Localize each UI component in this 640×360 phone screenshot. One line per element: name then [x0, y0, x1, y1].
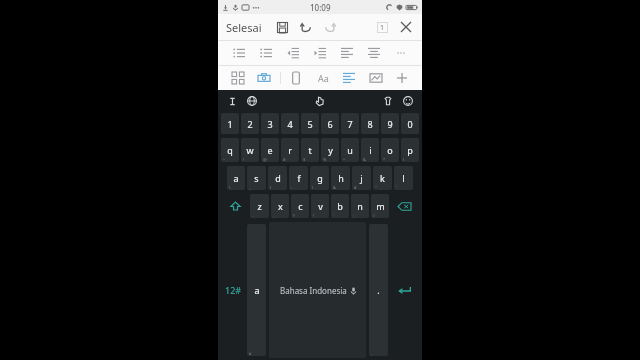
button[interactable]: o [381, 138, 399, 162]
button[interactable]: Align left [336, 42, 358, 64]
button[interactable]: p [401, 138, 419, 162]
button[interactable]: z [250, 194, 269, 218]
button[interactable]: Redo [320, 17, 340, 37]
staticText: r [288, 144, 292, 156]
button[interactable]: Bahasa Indonesia [269, 222, 366, 358]
staticText: b [337, 200, 343, 212]
button[interactable]: c [291, 194, 309, 218]
staticText: @ [263, 157, 267, 162]
staticText: , [273, 213, 275, 218]
button[interactable]: r [281, 138, 299, 162]
button[interactable]: f [289, 166, 308, 190]
button[interactable]: Text style [312, 67, 334, 89]
staticText: 7 [347, 118, 353, 130]
staticText: x [278, 200, 283, 212]
button[interactable]: g [310, 166, 329, 190]
staticText: ) [312, 185, 314, 190]
staticText: f [297, 172, 301, 184]
button[interactable]: 3 [261, 113, 279, 134]
button[interactable]: Bulleted list [228, 42, 250, 64]
button[interactable]: a [247, 224, 266, 356]
staticText: 2 [247, 118, 253, 130]
button[interactable]: . [369, 224, 388, 356]
staticText: ! [313, 213, 315, 218]
button[interactable]: Apps [227, 67, 249, 89]
button[interactable]: t [301, 138, 319, 162]
button[interactable]: e [261, 138, 279, 162]
button[interactable]: Decrease indent [282, 42, 304, 64]
button[interactable]: Language [244, 93, 260, 109]
staticText: $ [303, 157, 306, 162]
staticText: à [249, 351, 252, 356]
staticText: ^ [343, 157, 346, 162]
button[interactable]: Undo [296, 17, 316, 37]
button[interactable]: j [352, 166, 371, 190]
staticText: ~ [223, 157, 226, 162]
button[interactable]: d [268, 166, 287, 190]
button[interactable]: q [221, 138, 239, 162]
staticText: 0 [407, 118, 413, 130]
button[interactable]: Selesai [224, 17, 264, 38]
staticText: t [308, 144, 312, 156]
button[interactable]: x [271, 194, 289, 218]
button[interactable]: 6 [321, 113, 339, 134]
staticText: u [347, 144, 353, 156]
button[interactable]: Insert image [365, 67, 387, 89]
button[interactable]: w [241, 138, 259, 162]
button[interactable]: Shift [223, 192, 248, 220]
button[interactable]: 9 [381, 113, 399, 134]
staticText: c [298, 200, 303, 212]
button[interactable]: l [394, 166, 413, 190]
button[interactable]: Increase indent [309, 42, 331, 64]
button[interactable]: 7 [341, 113, 359, 134]
button[interactable]: More options [390, 42, 412, 64]
button[interactable]: Enter [391, 222, 417, 358]
button[interactable]: b [331, 194, 349, 218]
staticText: a [254, 284, 260, 296]
button[interactable]: Page 1 [372, 17, 392, 37]
button[interactable]: m [371, 194, 389, 218]
button[interactable]: i [361, 138, 379, 162]
staticText: w [246, 144, 254, 156]
button[interactable]: 5 [301, 113, 319, 134]
staticText: / [373, 213, 375, 218]
staticText: ? [293, 213, 295, 218]
button[interactable]: n [351, 194, 369, 218]
button[interactable]: a [227, 166, 245, 190]
button[interactable]: 0 [401, 113, 419, 134]
button[interactable]: Camera [253, 67, 275, 89]
button[interactable]: 8 [361, 113, 379, 134]
staticText: 3 [267, 118, 273, 130]
button[interactable]: Emoji [400, 93, 416, 109]
button[interactable]: s [247, 166, 266, 190]
button[interactable]: Themes [380, 93, 396, 109]
button[interactable]: 1 [221, 113, 239, 134]
button[interactable]: Paragraph [338, 67, 360, 89]
staticText: h [338, 172, 344, 184]
button[interactable]: Add [391, 67, 413, 89]
button[interactable]: Save [272, 17, 292, 37]
button[interactable]: y [321, 138, 339, 162]
staticText: 1 [227, 118, 233, 130]
button[interactable]: u [341, 138, 359, 162]
button[interactable]: h [331, 166, 350, 190]
button[interactable]: Page view [285, 67, 307, 89]
button[interactable]: k [373, 166, 392, 190]
staticText: 6 [327, 118, 333, 130]
staticText: v [318, 200, 323, 212]
button[interactable]: Symbols [223, 222, 244, 358]
staticText: ( [270, 185, 272, 190]
button[interactable]: Align center [363, 42, 385, 64]
button[interactable]: 4 [281, 113, 299, 134]
button[interactable]: v [311, 194, 329, 218]
staticText: " [375, 185, 377, 190]
button[interactable]: Text edit [224, 93, 240, 109]
button[interactable]: Numbered list [255, 42, 277, 64]
staticText: z [257, 200, 262, 212]
button[interactable]: 2 [241, 113, 259, 134]
button[interactable]: Close [396, 17, 416, 37]
button[interactable]: Cursor control [312, 93, 328, 109]
staticText: s [254, 172, 259, 184]
button[interactable]: Backspace [391, 192, 417, 220]
staticText: . [377, 284, 380, 296]
